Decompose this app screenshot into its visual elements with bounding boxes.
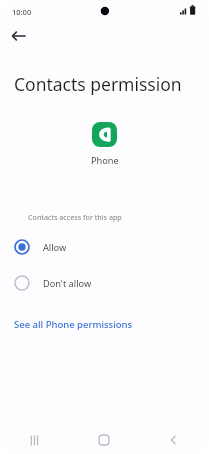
button[interactable]: Back [6,23,32,49]
staticText: Allow [43,241,67,254]
staticText: Contacts permission [14,72,182,96]
button[interactable]: See all Phone permissions [0,314,147,335]
button[interactable]: Allow [0,235,209,259]
staticText: See all Phone permissions [14,318,133,331]
button[interactable]: Home [69,426,139,454]
button[interactable]: Back [139,426,209,454]
staticText: 10:00 [12,7,32,17]
button[interactable]: Don't allow [0,271,209,295]
button[interactable]: Recents [0,426,69,454]
staticText: Phone [91,154,119,167]
staticText: Don't allow [43,277,92,290]
staticText: Contacts access for this app [28,212,122,222]
